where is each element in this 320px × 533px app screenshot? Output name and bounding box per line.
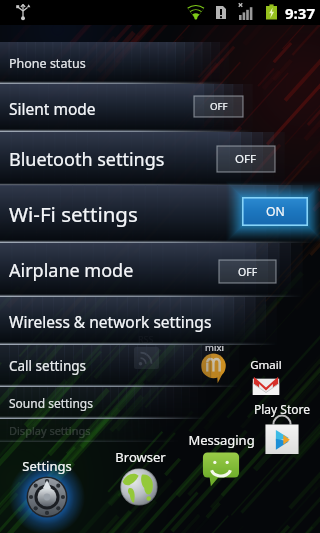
button[interactable]: RSS widget — [134, 347, 159, 369]
button[interactable]: Play Store — [264, 418, 300, 454]
staticText: Browser — [115, 448, 166, 466]
button[interactable]: Airplane mode — [0, 243, 320, 297]
staticText: Settings — [22, 457, 72, 475]
staticText: ON — [266, 203, 285, 220]
staticText: Play Store — [254, 401, 310, 417]
staticText: OFF — [210, 100, 228, 113]
staticText: Silent mode — [9, 98, 96, 119]
staticText: Messaging — [188, 431, 255, 449]
button[interactable]: OFF — [193, 95, 244, 118]
button[interactable]: Wireless & network settings — [0, 297, 320, 345]
button[interactable]: mixi — [200, 353, 228, 381]
button[interactable]: Browser — [120, 468, 158, 506]
button[interactable]: OFF — [218, 259, 277, 284]
staticText: Sound settings — [9, 395, 94, 411]
staticText: Display settings — [9, 423, 91, 438]
button[interactable]: ON — [226, 181, 320, 242]
button[interactable]: Wi-Fi settings — [0, 185, 320, 243]
button[interactable]: Call settings — [0, 345, 320, 387]
button[interactable]: Silent mode — [0, 84, 320, 132]
staticText: Wireless & network settings — [9, 311, 212, 332]
button[interactable]: Display settings — [0, 419, 320, 442]
staticText: Bluetooth settings — [9, 147, 165, 172]
button[interactable]: Bluetooth settings — [0, 132, 320, 186]
button[interactable]: Phone status — [0, 42, 320, 84]
staticText: Gmail — [250, 357, 282, 373]
staticText: OFF — [235, 151, 257, 167]
staticText: RSS — [138, 333, 154, 345]
button[interactable]: OFF — [216, 145, 276, 173]
staticText: mixi — [205, 341, 224, 354]
button[interactable]: Sound settings — [0, 387, 320, 419]
button[interactable]: Messaging — [200, 447, 242, 489]
staticText: Call settings — [9, 357, 87, 375]
staticText: Airplane mode — [9, 258, 134, 283]
staticText: OFF — [238, 265, 258, 279]
staticText: Phone status — [9, 55, 86, 72]
button[interactable]: Settings — [9, 459, 85, 533]
staticText: 9:37 — [285, 3, 315, 23]
button[interactable]: Gmail — [251, 370, 281, 400]
staticText: Wi-Fi settings — [9, 200, 138, 228]
